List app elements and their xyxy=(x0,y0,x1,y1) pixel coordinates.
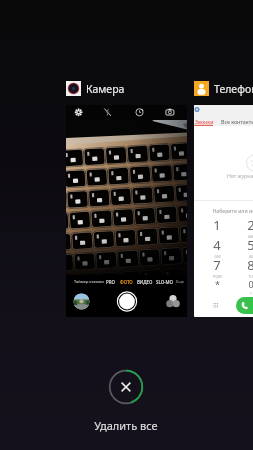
button[interactable]: Телефон xyxy=(194,80,253,317)
staticText: JKL xyxy=(249,254,253,259)
staticText: 1 xyxy=(213,216,221,234)
staticText: Звонки xyxy=(195,118,214,125)
staticText: Нет журнала вызовов xyxy=(227,172,253,179)
staticText: 2 xyxy=(247,216,253,234)
staticText: 7 xyxy=(213,256,221,274)
staticText: * xyxy=(215,278,220,290)
staticText: Телефон xyxy=(214,82,253,96)
staticText: SLO-MO xyxy=(156,279,173,285)
staticText: ВИДЕО xyxy=(137,279,153,285)
staticText: 4 xyxy=(213,236,221,254)
staticText: PQRS xyxy=(213,274,222,279)
staticText: 5 xyxy=(247,236,253,254)
staticText: TUV xyxy=(248,274,253,279)
staticText: Таймер съемки xyxy=(74,279,104,284)
staticText: Удалить все xyxy=(94,418,158,433)
staticText: ABC xyxy=(248,234,253,239)
staticText: 0 xyxy=(248,278,253,290)
staticText: 8 xyxy=(247,256,253,274)
staticText: Камера xyxy=(86,82,125,96)
staticText: Наберите или используйте поиск xyxy=(212,207,253,214)
button[interactable]: Камера xyxy=(66,80,187,317)
button[interactable]: Удалить все xyxy=(108,369,144,405)
staticText: Еще xyxy=(176,279,184,284)
staticText: + xyxy=(250,290,252,295)
staticText: ФОТО xyxy=(120,279,133,285)
staticText: Все контакты xyxy=(221,118,253,125)
staticText: PRO xyxy=(106,279,115,285)
staticText: GHI xyxy=(214,254,221,259)
